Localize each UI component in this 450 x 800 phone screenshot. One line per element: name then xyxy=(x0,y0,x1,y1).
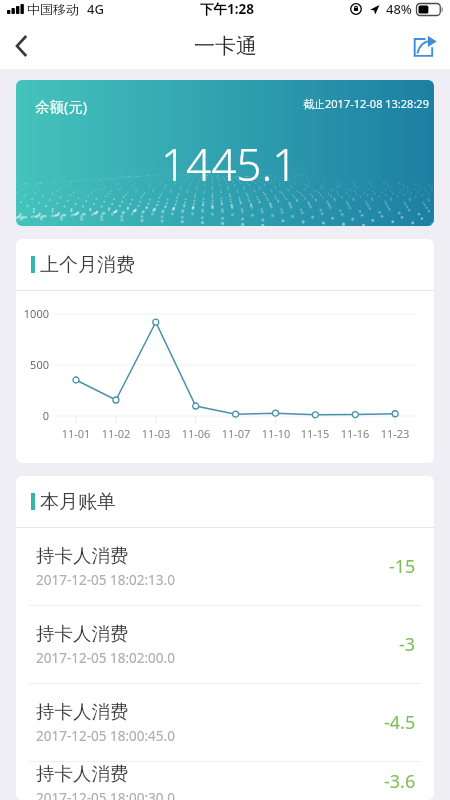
staticText: 余额(元) xyxy=(35,96,88,116)
staticText: -4.5 xyxy=(384,710,416,735)
staticText: 中国移动 xyxy=(27,1,79,17)
staticText: 持卡人消费 xyxy=(36,700,129,723)
staticText: 2017-12-05 18:00:30.0 xyxy=(36,789,175,800)
button[interactable]: 持卡人消费 xyxy=(16,762,434,800)
staticText: -15 xyxy=(389,554,416,579)
button[interactable]: 持卡人消费 xyxy=(16,528,434,605)
staticText: -3.6 xyxy=(384,769,416,794)
staticText: 11-10 xyxy=(255,426,297,441)
staticText: 11-01 xyxy=(55,426,97,441)
button[interactable]: 持卡人消费 xyxy=(16,606,434,683)
button[interactable]: 持卡人消费 xyxy=(16,684,434,761)
button[interactable]: Share xyxy=(403,24,447,68)
staticText: 上个月消费 xyxy=(40,253,135,277)
staticText: 2017-12-05 18:02:00.0 xyxy=(36,649,175,667)
staticText: 11-23 xyxy=(374,426,416,441)
staticText: 11-16 xyxy=(334,426,376,441)
staticText: 11-07 xyxy=(215,426,257,441)
staticText: 0 xyxy=(16,408,49,423)
staticText: 4G xyxy=(87,0,104,18)
staticText: 2017-12-05 18:02:13.0 xyxy=(36,571,175,589)
staticText: 11-03 xyxy=(135,426,177,441)
staticText: 一卡通 xyxy=(194,33,257,59)
staticText: 持卡人消费 xyxy=(36,544,129,567)
staticText: 下午1:28 xyxy=(200,0,254,18)
button[interactable]: Back xyxy=(0,24,44,68)
staticText: 持卡人消费 xyxy=(36,762,129,785)
staticText: 2017-12-05 18:00:45.0 xyxy=(36,727,175,745)
staticText: 本月账单 xyxy=(40,490,116,514)
staticText: 11-15 xyxy=(294,426,336,441)
button[interactable]: 余额(元) xyxy=(16,80,434,226)
staticText: 48% xyxy=(386,0,412,18)
staticText: 截止2017-12-08 13:28:29 xyxy=(303,96,429,111)
staticText: 500 xyxy=(16,357,49,372)
staticText: 11-06 xyxy=(175,426,217,441)
staticText: 1000 xyxy=(16,306,49,321)
staticText: 持卡人消费 xyxy=(36,622,129,645)
staticText: 1445.1 xyxy=(161,134,298,194)
staticText: 11-02 xyxy=(95,426,137,441)
staticText: -3 xyxy=(399,632,416,657)
